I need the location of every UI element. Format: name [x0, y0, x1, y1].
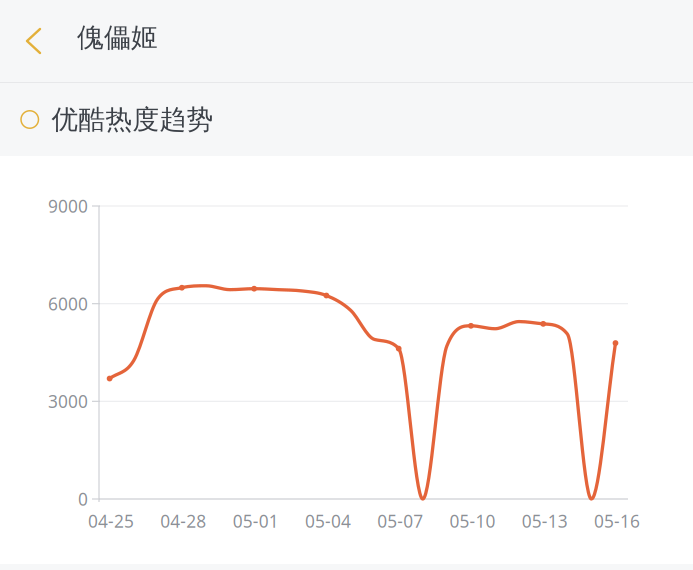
button[interactable]: Back: [0, 0, 77, 82]
staticText: 05-04: [305, 509, 351, 532]
staticText: 9000: [48, 194, 88, 217]
staticText: 05-13: [522, 509, 568, 532]
staticText: 04-25: [88, 509, 134, 532]
staticText: 傀儡姬: [77, 21, 158, 54]
staticText: 04-28: [160, 509, 206, 532]
staticText: 05-16: [594, 509, 640, 532]
staticText: 05-07: [377, 509, 423, 532]
staticText: 05-10: [449, 509, 495, 532]
staticText: 05-01: [233, 509, 279, 532]
staticText: 0: [78, 487, 88, 510]
staticText: 3000: [48, 390, 88, 413]
staticText: 6000: [48, 292, 88, 315]
staticText: 优酷热度趋势: [51, 103, 213, 136]
